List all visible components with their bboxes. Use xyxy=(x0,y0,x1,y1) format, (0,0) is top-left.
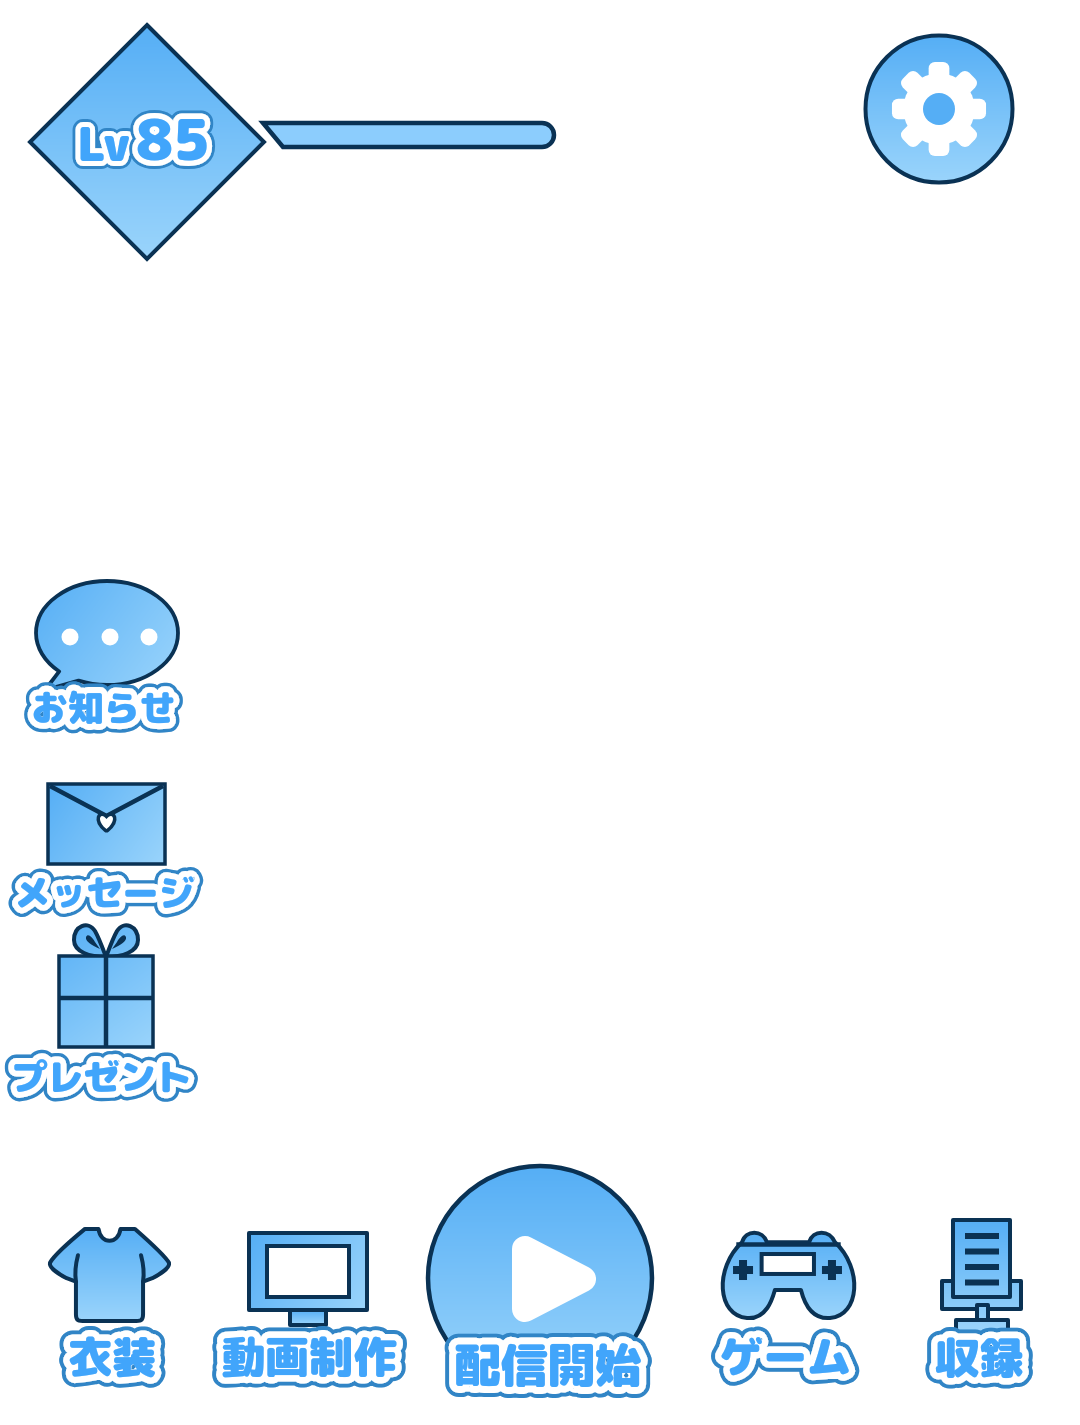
staticText: お知らせ xyxy=(31,682,176,732)
button[interactable]: 収録 xyxy=(910,1205,1050,1400)
staticText: お知らせ xyxy=(31,682,176,732)
button[interactable]: お知らせ xyxy=(16,575,206,735)
staticText: メッセージ xyxy=(14,867,195,917)
staticText: お知らせ xyxy=(31,682,176,732)
staticText: プレゼント xyxy=(11,1051,192,1101)
staticText: 衣装 xyxy=(68,1326,156,1387)
staticText: 85 xyxy=(136,100,210,178)
staticText: プレゼント xyxy=(11,1051,192,1101)
staticText: ゲーム xyxy=(719,1326,851,1387)
button[interactable]: プレゼント xyxy=(10,918,210,1108)
staticText: Lv xyxy=(77,112,130,176)
button[interactable]: 衣装 xyxy=(30,1218,195,1398)
staticText: 衣装 xyxy=(68,1326,156,1387)
staticText: メッセージ xyxy=(14,867,195,917)
staticText: 動画制作 xyxy=(221,1326,397,1387)
staticText: メッセージ xyxy=(14,867,195,917)
staticText: 動画制作 xyxy=(221,1326,397,1387)
staticText: 配信開始 xyxy=(454,1331,642,1397)
staticText: 収録 xyxy=(935,1327,1023,1388)
staticText: 収録 xyxy=(935,1327,1023,1388)
staticText: 動画制作 xyxy=(221,1326,397,1387)
staticText: 衣装 xyxy=(68,1326,156,1387)
button[interactable]: Settings xyxy=(863,33,1013,183)
staticText: 85 xyxy=(136,100,210,178)
button[interactable]: メッセージ xyxy=(10,778,210,918)
button[interactable]: ゲーム xyxy=(700,1218,870,1398)
staticText: ゲーム xyxy=(719,1326,851,1387)
button[interactable]: 動画制作 xyxy=(215,1218,405,1398)
staticText: 85 xyxy=(136,100,210,178)
staticText: 配信開始 xyxy=(454,1331,642,1397)
staticText: Lv xyxy=(77,112,130,176)
staticText: 収録 xyxy=(935,1327,1023,1388)
staticText: ゲーム xyxy=(719,1326,851,1387)
button[interactable]: 配信開始 xyxy=(420,1160,670,1410)
staticText: Lv xyxy=(77,112,130,176)
staticText: 配信開始 xyxy=(454,1331,642,1397)
staticText: プレゼント xyxy=(11,1051,192,1101)
button[interactable]: Level 85 xyxy=(27,22,267,262)
